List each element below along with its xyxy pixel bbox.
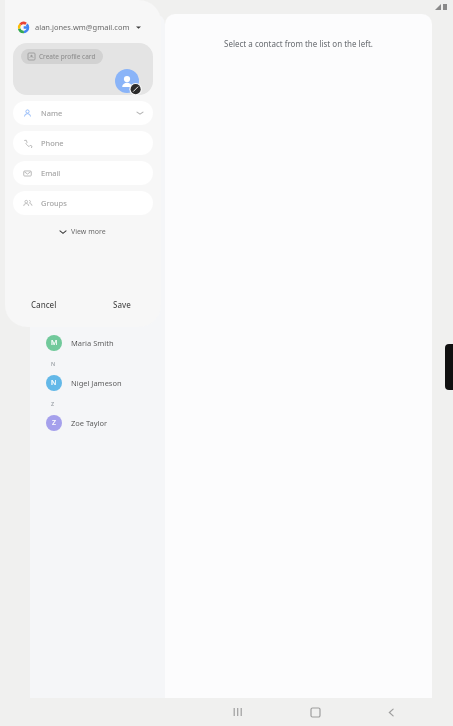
button[interactable]: Groups <box>13 191 153 215</box>
button[interactable]: M <box>30 330 165 356</box>
button[interactable]: Z <box>30 410 165 436</box>
staticText: Email <box>41 168 61 178</box>
button[interactable]: Recents <box>223 698 253 726</box>
staticText: Groups <box>41 198 67 208</box>
staticText: Zoe Taylor <box>71 418 108 428</box>
button[interactable]: Back <box>376 698 406 726</box>
button[interactable]: alan.jones.wm@gmail.com <box>5 16 161 38</box>
button[interactable]: Cancel <box>5 287 83 321</box>
button[interactable]: Home <box>300 698 330 726</box>
button[interactable]: Save <box>83 287 161 321</box>
staticText: Phone <box>41 138 64 148</box>
button[interactable]: Phone <box>13 131 153 155</box>
button[interactable]: Create profile card <box>21 49 103 64</box>
staticText: N <box>51 378 57 388</box>
staticText: Select a contact from the list on the le… <box>224 38 373 49</box>
staticText: Z <box>52 418 57 428</box>
staticText: Name <box>41 108 63 118</box>
button[interactable]: View more <box>50 223 116 241</box>
staticText: Cancel <box>31 299 57 310</box>
button[interactable]: Edge panel handle <box>445 344 453 390</box>
staticText: Create profile card <box>39 52 96 61</box>
staticText: M <box>51 338 58 348</box>
button[interactable]: N <box>30 370 165 396</box>
staticText: View more <box>71 227 106 237</box>
button[interactable]: Email <box>13 161 153 185</box>
staticText: Save <box>113 299 131 310</box>
staticText: N <box>51 360 56 367</box>
button[interactable]: Change photo <box>115 69 139 93</box>
staticText: Z <box>51 400 55 407</box>
button[interactable]: Name <box>13 101 153 125</box>
staticText: Nigel Jameson <box>71 378 122 388</box>
staticText: alan.jones.wm@gmail.com <box>35 22 130 32</box>
staticText: Maria Smith <box>71 338 114 348</box>
